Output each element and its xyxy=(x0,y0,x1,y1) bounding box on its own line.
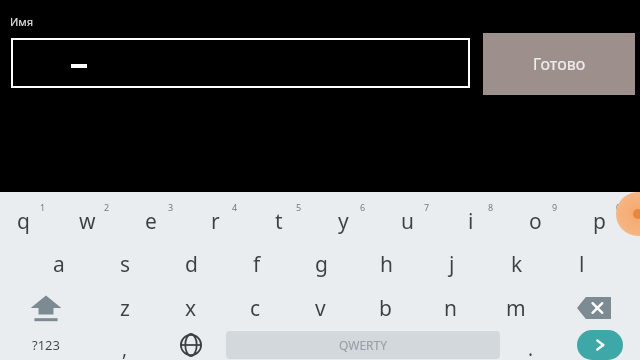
staticText: e xyxy=(145,207,157,236)
button[interactable]: i xyxy=(448,192,512,242)
staticText: 3 xyxy=(168,201,174,213)
staticText: Готово xyxy=(533,53,586,75)
staticText: 4 xyxy=(232,201,238,213)
staticText: v xyxy=(315,294,326,323)
staticText: ?123 xyxy=(32,336,60,354)
staticText: f xyxy=(253,250,261,279)
button[interactable]: . xyxy=(502,330,560,360)
staticText: 1 xyxy=(40,201,46,213)
staticText: z xyxy=(120,294,130,323)
button[interactable]: c xyxy=(223,286,288,330)
staticText: q xyxy=(17,207,30,236)
staticText: 0 xyxy=(616,201,622,213)
staticText: s xyxy=(120,250,131,279)
button[interactable]: r xyxy=(192,192,256,242)
staticText: i xyxy=(468,207,474,236)
staticText: a xyxy=(53,250,65,279)
button[interactable]: k xyxy=(484,242,549,286)
button[interactable]: m xyxy=(483,286,548,330)
button[interactable]: ?123 xyxy=(0,330,92,360)
staticText: w xyxy=(79,207,96,236)
button[interactable] xyxy=(11,38,470,88)
button[interactable]: z xyxy=(92,286,158,330)
staticText: 9 xyxy=(552,201,558,213)
button[interactable]: t xyxy=(256,192,320,242)
button[interactable]: j xyxy=(419,242,484,286)
staticText: n xyxy=(444,294,457,323)
staticText: 8 xyxy=(488,201,494,213)
staticText: c xyxy=(250,294,261,323)
button[interactable]: n xyxy=(418,286,483,330)
button[interactable]: Shift xyxy=(0,286,92,330)
staticText: , xyxy=(122,336,128,360)
button[interactable]: Backspace xyxy=(548,286,640,330)
button[interactable]: Готово xyxy=(483,33,635,95)
staticText: 7 xyxy=(424,201,430,213)
staticText: m xyxy=(506,294,526,323)
staticText: y xyxy=(338,207,349,236)
button[interactable]: Floating bubble xyxy=(616,192,640,236)
staticText: QWERTY xyxy=(339,337,388,353)
staticText: 2 xyxy=(104,201,110,213)
button[interactable]: s xyxy=(92,242,158,286)
staticText: t xyxy=(275,207,283,236)
staticText: . xyxy=(528,336,534,360)
staticText: Имя xyxy=(10,14,34,29)
staticText: b xyxy=(379,294,392,323)
staticText: h xyxy=(380,250,393,279)
staticText: r xyxy=(211,207,220,236)
staticText: d xyxy=(185,250,198,279)
button[interactable]: b xyxy=(353,286,418,330)
button[interactable]: v xyxy=(288,286,353,330)
button[interactable]: g xyxy=(289,242,354,286)
staticText: l xyxy=(579,250,585,279)
button[interactable]: u xyxy=(384,192,448,242)
button[interactable]: Change language xyxy=(158,330,224,360)
button[interactable]: e xyxy=(128,192,192,242)
staticText: u xyxy=(401,207,414,236)
button[interactable]: q xyxy=(0,192,64,242)
staticText: o xyxy=(529,207,542,236)
staticText: j xyxy=(449,250,455,279)
button[interactable]: o xyxy=(512,192,576,242)
staticText: g xyxy=(315,250,328,279)
button[interactable]: , xyxy=(92,330,158,360)
button[interactable]: w xyxy=(64,192,128,242)
button[interactable]: l xyxy=(549,242,614,286)
button[interactable]: a xyxy=(26,242,92,286)
button[interactable]: Next xyxy=(577,330,623,360)
staticText: p xyxy=(593,207,606,236)
button[interactable]: f xyxy=(224,242,289,286)
staticText: 6 xyxy=(360,201,366,213)
button[interactable]: h xyxy=(354,242,419,286)
button[interactable]: QWERTY xyxy=(226,331,500,359)
button[interactable]: y xyxy=(320,192,384,242)
button[interactable]: x xyxy=(158,286,223,330)
button[interactable]: p xyxy=(576,192,640,242)
staticText: 5 xyxy=(296,201,302,213)
staticText: k xyxy=(511,250,523,279)
staticText: x xyxy=(185,294,197,323)
button[interactable]: d xyxy=(158,242,224,286)
